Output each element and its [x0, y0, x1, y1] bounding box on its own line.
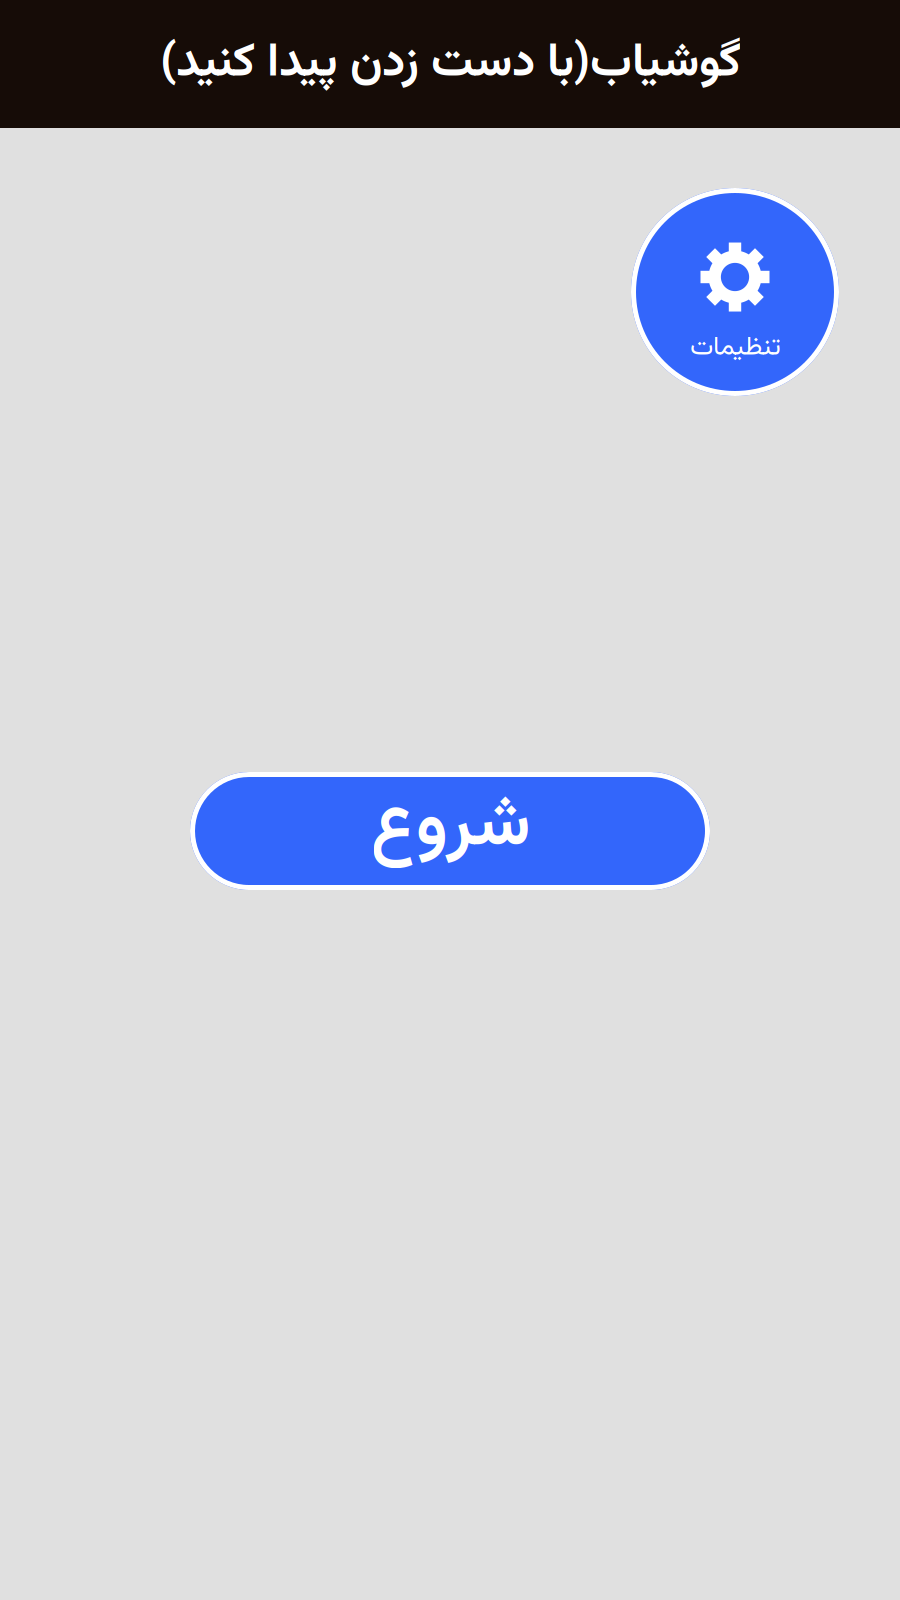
- button[interactable]: تنظیمات: [631, 188, 839, 396]
- button[interactable]: شروع: [190, 772, 710, 890]
- staticText: گوشیاب(با دست زدن پیدا کنید): [159, 27, 740, 100]
- staticText: شروع: [370, 772, 530, 882]
- staticText: تنظیمات: [689, 327, 780, 369]
